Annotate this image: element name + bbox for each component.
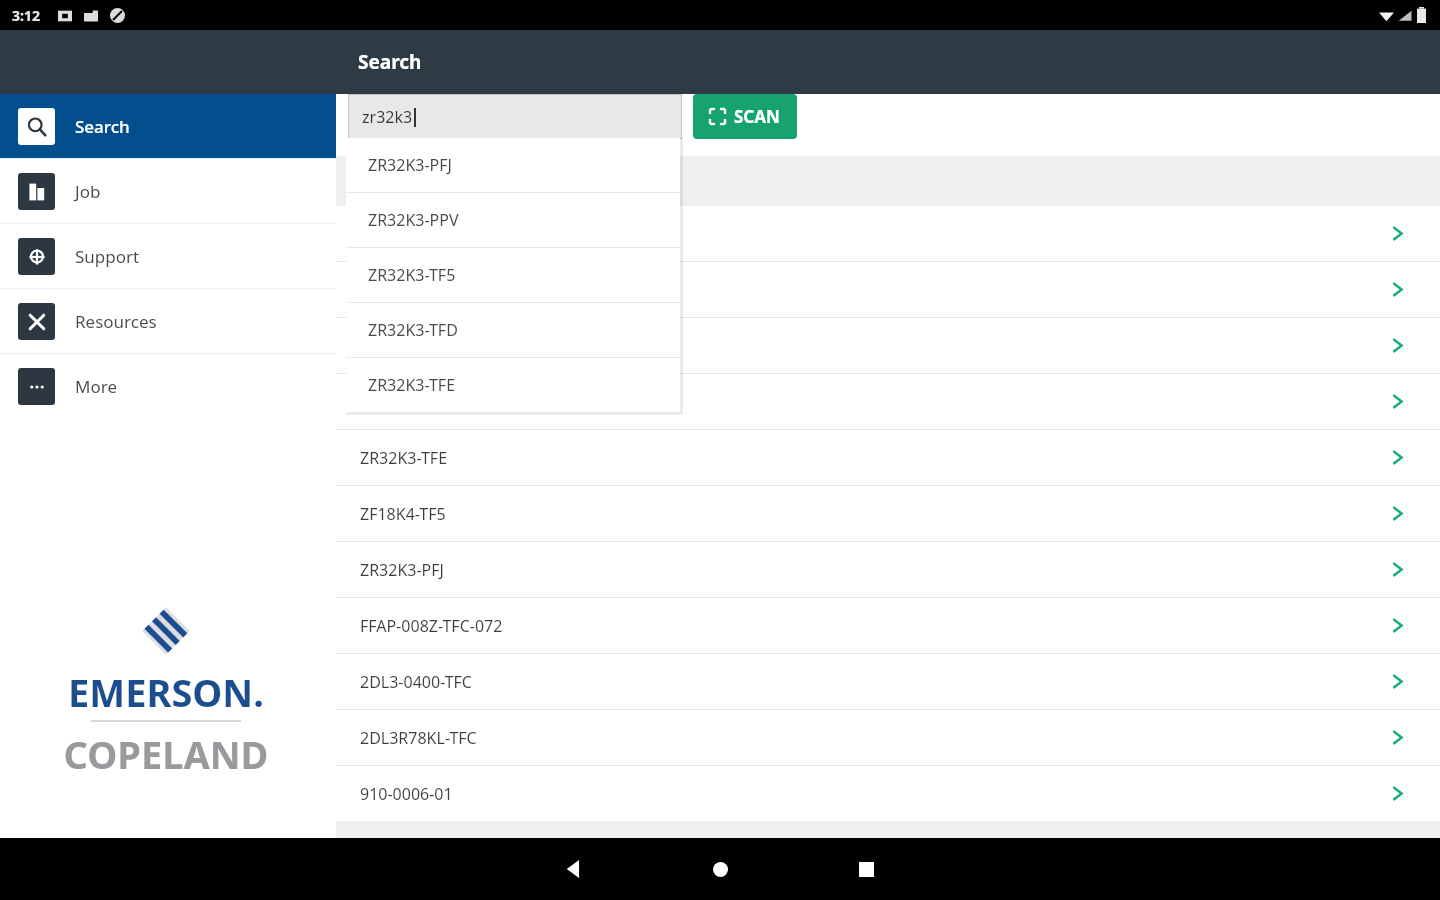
button[interactable]: ZR32K3-PFJ	[336, 206, 1440, 261]
staticText: 2DL3-0400-TFC	[360, 671, 1389, 693]
button[interactable]: ZF18K4-TF5	[336, 486, 1440, 541]
staticText: zr32k3	[362, 106, 413, 128]
staticText: ZR32K3-PFJ	[360, 559, 1389, 581]
button[interactable]: ZR32K3-PFJ	[336, 542, 1440, 597]
button[interactable]: Resources	[0, 289, 336, 353]
other: Open ZF18K4-TF5	[1389, 505, 1406, 522]
staticText: ZR32K3-PFJ	[368, 154, 452, 176]
button[interactable]: ZR32K3-TF5	[346, 248, 680, 302]
staticText: Search	[75, 115, 130, 138]
button[interactable]: ZR32K3-TFE	[346, 358, 680, 412]
button[interactable]: SCAN	[693, 94, 797, 139]
button[interactable]: Back	[546, 841, 602, 897]
other: Open ZR32K3-PFJ	[1389, 561, 1406, 578]
button[interactable]: FFAP-008Z-TFC-072	[336, 598, 1440, 653]
other: Open ZR32K3-TFE	[1389, 449, 1406, 466]
staticText: Support	[75, 245, 140, 268]
other: Open 910-0006-01	[1389, 785, 1406, 802]
button[interactable]: 2DL3-0400-TFC	[336, 654, 1440, 709]
other: Open ZR32K3-TF5	[1389, 337, 1406, 354]
button[interactable]: More	[0, 354, 336, 418]
staticText: More	[75, 375, 117, 398]
staticText: ZR32K3-PPV	[368, 209, 459, 231]
button[interactable]: Recent apps	[838, 841, 894, 897]
other: Open ZR32K3-PFJ	[1389, 225, 1406, 242]
staticText: Job	[75, 180, 101, 203]
staticText: ZR32K3-PPV	[360, 279, 1389, 301]
button[interactable]: Home	[692, 841, 748, 897]
staticText: Resources	[75, 310, 157, 333]
button[interactable]: 2DL3R78KL-TFC	[336, 710, 1440, 765]
button[interactable]: Support	[0, 224, 336, 288]
staticText: 910-0006-01	[360, 783, 1389, 805]
button[interactable]: ZR32K3-PPV	[346, 193, 680, 247]
button[interactable]: ZR32K3-TFE	[336, 430, 1440, 485]
staticText: ZF18K4-TF5	[360, 503, 1389, 525]
other: Open 2DL3R78KL-TFC	[1389, 729, 1406, 746]
button[interactable]: Job	[0, 159, 336, 223]
other: Open ZR32K3-PPV	[1389, 281, 1406, 298]
staticText: COPELAND	[38, 728, 294, 780]
button[interactable]: ZR32K3-PFJ	[346, 138, 680, 192]
button[interactable]: ZR32K3-TFD	[346, 303, 680, 357]
other: Open FFAP-008Z-TFC-072	[1389, 617, 1406, 634]
button[interactable]: Search	[0, 94, 336, 158]
staticText: 2DL3R78KL-TFC	[360, 727, 1389, 749]
staticText: FFAP-008Z-TFC-072	[360, 615, 1389, 637]
button[interactable]: ZR32K3-PPV	[336, 262, 1440, 317]
staticText: ZR32K3-TF5	[360, 335, 1389, 357]
button[interactable]: zr32k3	[348, 94, 682, 139]
button[interactable]: ZR32K3-TFD	[336, 374, 1440, 429]
staticText: Search	[358, 49, 422, 75]
staticText: 3:12	[12, 6, 40, 25]
other: Open 2DL3-0400-TFC	[1389, 673, 1406, 690]
staticText: ZR32K3-TF5	[368, 264, 456, 286]
staticText: ZR32K3-TFE	[360, 447, 1389, 469]
staticText: ZR32K3-TFE	[368, 374, 456, 396]
staticText: EMERSON.	[38, 666, 294, 718]
staticText: ZR32K3-TFD	[368, 319, 458, 341]
button[interactable]: ZR32K3-TF5	[336, 318, 1440, 373]
other: Open ZR32K3-TFD	[1389, 393, 1406, 410]
button[interactable]: 910-0006-01	[336, 766, 1440, 821]
staticText: ZR32K3-PFJ	[360, 223, 1389, 245]
staticText: SCAN	[734, 105, 780, 128]
